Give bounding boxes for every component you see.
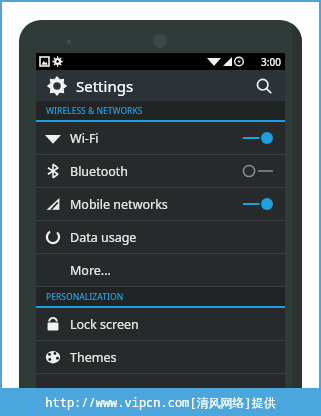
staticText: Data usage: [70, 229, 137, 246]
staticText: Mobile networks: [70, 196, 168, 213]
button[interactable]: Search: [253, 75, 275, 97]
button[interactable]: Settings app icon: [46, 75, 68, 97]
button[interactable]: Bluetooth toggle: [243, 162, 273, 180]
button[interactable]: Bluetooth: [36, 155, 285, 187]
staticText: Lock screen: [70, 316, 139, 333]
staticText: WIRELESS & NETWORKS: [46, 105, 143, 117]
button[interactable]: Mobile networks toggle: [243, 195, 273, 213]
button[interactable]: Wi-Fi toggle: [243, 129, 273, 147]
staticText: Settings: [76, 76, 134, 96]
button[interactable]: Themes: [36, 341, 285, 373]
button[interactable]: [36, 374, 285, 390]
button[interactable]: Data usage: [36, 221, 285, 253]
button[interactable]: Wi-Fi: [36, 122, 285, 154]
button[interactable]: More...: [36, 254, 285, 286]
staticText: 3:00: [261, 55, 281, 69]
staticText: PERSONALIZATION: [46, 291, 124, 303]
staticText: Bluetooth: [70, 163, 129, 180]
button[interactable]: Lock screen: [36, 308, 285, 340]
staticText: http://www.vipcn.com[清风网络]提供: [45, 394, 276, 410]
button[interactable]: Mobile networks: [36, 188, 285, 220]
staticText: Themes: [70, 349, 117, 366]
staticText: Wi-Fi: [70, 130, 99, 147]
staticText: More...: [70, 262, 111, 279]
